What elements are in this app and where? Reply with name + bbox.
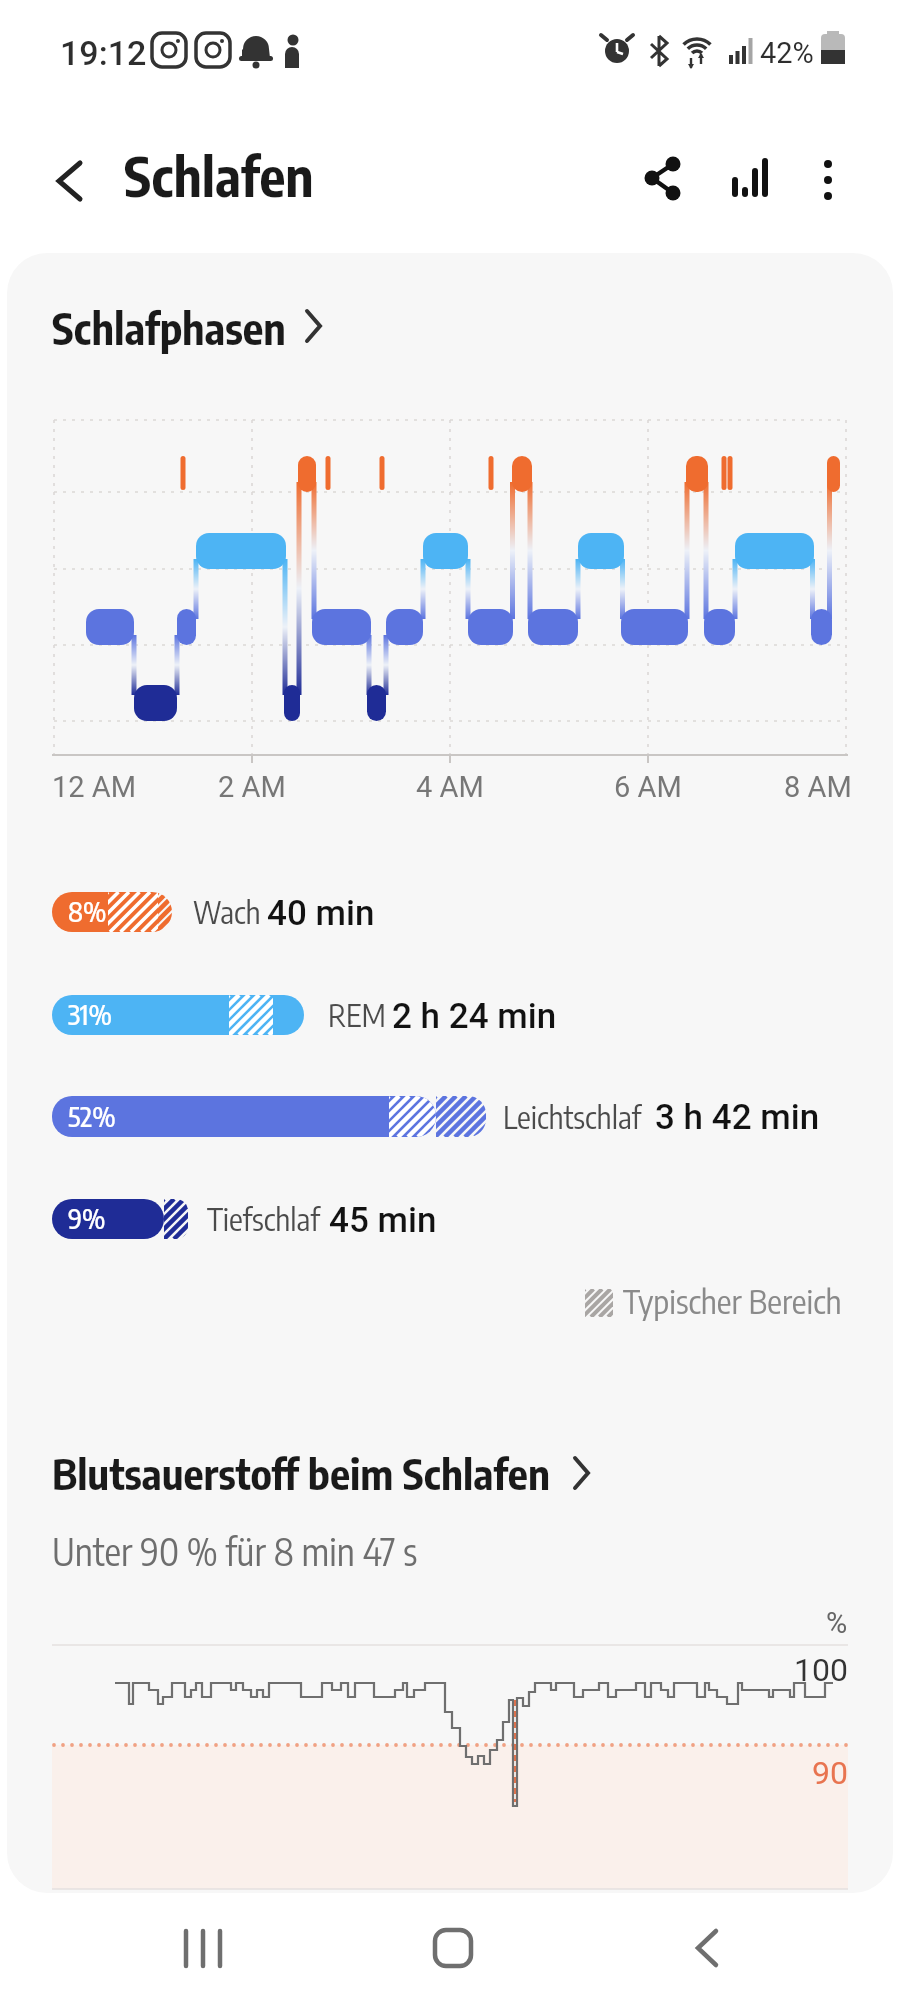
staticText: 3 h 42 min xyxy=(655,1097,820,1138)
staticText: Wach xyxy=(193,892,261,931)
button[interactable] xyxy=(408,1908,498,1988)
staticText: % xyxy=(826,1606,848,1640)
staticText: 45 min xyxy=(329,1200,437,1241)
staticText: 90 xyxy=(812,1754,848,1792)
staticText: 42% xyxy=(760,36,814,70)
staticText: 9% xyxy=(68,1201,106,1235)
staticText: Schlafphasen xyxy=(52,301,286,355)
staticText: 40 min xyxy=(267,893,375,934)
staticText: 2 AM xyxy=(218,770,286,804)
staticText: Schlafen xyxy=(124,141,314,208)
staticText: 6 AM xyxy=(614,770,682,804)
button[interactable] xyxy=(718,146,782,210)
staticText: 100 xyxy=(794,1651,848,1689)
button[interactable] xyxy=(42,148,98,212)
staticText: 19:12 xyxy=(60,33,147,73)
staticText: Leichtschlaf xyxy=(503,1097,642,1136)
staticText: 12 AM xyxy=(52,770,137,804)
staticText: Typischer Bereich xyxy=(623,1280,842,1321)
staticText: 2 h 24 min xyxy=(392,996,557,1037)
staticText: 8 AM xyxy=(784,770,852,804)
button[interactable]: Blutsauerstoff beim Schlafen xyxy=(52,1442,612,1502)
button[interactable] xyxy=(800,146,856,210)
staticText: Tiefschlaf xyxy=(207,1199,320,1238)
staticText: 4 AM xyxy=(416,770,484,804)
staticText: 31% xyxy=(68,997,112,1031)
button[interactable] xyxy=(630,146,694,210)
button[interactable] xyxy=(158,1908,248,1988)
button[interactable] xyxy=(660,1908,750,1988)
staticText: 52% xyxy=(68,1099,116,1133)
staticText: Unter 90 % für 8 min 47 s xyxy=(52,1528,418,1574)
staticText: 8% xyxy=(68,894,107,928)
staticText: REM xyxy=(328,995,386,1034)
staticText: Blutsauerstoff beim Schlafen xyxy=(52,1447,550,1499)
button[interactable]: Schlafphasen xyxy=(52,295,342,355)
